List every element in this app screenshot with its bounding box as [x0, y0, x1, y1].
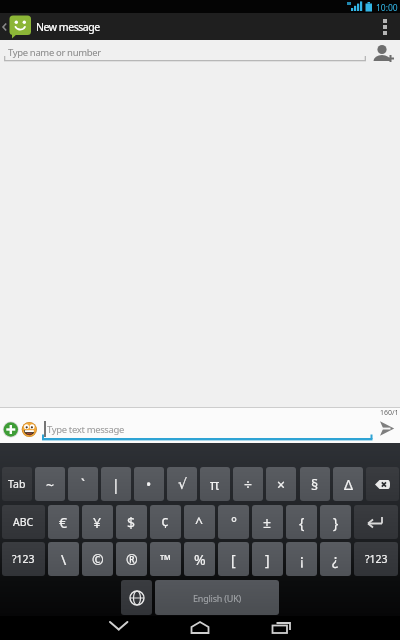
button[interactable] [0, 13, 34, 40]
staticText: ^ [195, 513, 204, 532]
staticText: { [299, 513, 305, 532]
button[interactable] [0, 40, 400, 67]
staticText: ¿ [332, 550, 339, 569]
staticText: € [59, 513, 68, 532]
staticText: } [333, 513, 339, 532]
button[interactable] [370, 415, 400, 441]
staticText: ~ [46, 475, 55, 494]
button[interactable]: { [286, 505, 317, 539]
button[interactable]: ° [218, 505, 249, 539]
staticText: 10:00 [376, 2, 398, 14]
staticText: $ [127, 513, 136, 532]
staticText: × [277, 475, 286, 494]
button[interactable]: ` [68, 467, 98, 501]
staticText: ¢ [161, 513, 170, 532]
button[interactable]: ¿ [320, 542, 351, 576]
button[interactable]: ^ [184, 505, 215, 539]
button[interactable]: [ [218, 542, 249, 576]
staticText: ABC [13, 515, 34, 529]
staticText: ] [265, 550, 270, 569]
button[interactable]: ?123 [2, 542, 45, 576]
staticText: Type text message [47, 423, 125, 436]
staticText: Tab [8, 477, 26, 491]
button[interactable] [374, 13, 400, 40]
button[interactable] [98, 616, 138, 640]
button[interactable]: ¡ [286, 542, 317, 576]
staticText: ÷ [244, 475, 253, 494]
button[interactable]: } [320, 505, 351, 539]
button[interactable]: π [200, 467, 230, 501]
staticText: 160/1 [380, 408, 399, 418]
button[interactable]: English (UK) [155, 580, 279, 615]
staticText: ¡ [300, 550, 304, 569]
button[interactable]: ¢ [150, 505, 181, 539]
button[interactable]: ABC [2, 505, 45, 539]
staticText: \ [61, 550, 67, 569]
button[interactable]: √ [167, 467, 197, 501]
button[interactable]: ® [116, 542, 147, 576]
staticText: ¥ [93, 513, 102, 532]
button[interactable]: © [82, 542, 113, 576]
button[interactable]: % [184, 542, 215, 576]
staticText: [ [231, 550, 236, 569]
button[interactable]: × [266, 467, 296, 501]
button[interactable] [0, 13, 400, 40]
staticText: Δ [344, 475, 353, 494]
button[interactable] [180, 616, 220, 640]
button[interactable]: ™ [150, 542, 181, 576]
button[interactable]: Tab [2, 467, 32, 501]
button[interactable]: € [48, 505, 79, 539]
button[interactable] [2, 413, 20, 432]
staticText: • [146, 475, 152, 494]
staticText: √ [178, 476, 187, 492]
staticText: % [194, 550, 206, 569]
button[interactable]: § [300, 467, 330, 501]
button[interactable]: • [134, 467, 164, 501]
staticText: © [92, 550, 104, 569]
staticText: ° [231, 513, 237, 532]
button[interactable] [121, 580, 152, 615]
button[interactable]: $ [116, 505, 147, 539]
staticText: | [112, 475, 120, 494]
button[interactable] [21, 413, 38, 432]
staticText: New message [36, 20, 100, 34]
staticText: English (UK) [193, 592, 242, 604]
button[interactable] [366, 467, 399, 501]
button[interactable]: Δ [333, 467, 363, 501]
button[interactable]: | [101, 467, 131, 501]
staticText: ?123 [12, 552, 35, 566]
staticText: ™ [160, 550, 171, 569]
staticText: § [311, 475, 319, 494]
button[interactable] [260, 616, 300, 640]
button[interactable] [354, 505, 398, 539]
staticText: Type name or number [8, 46, 101, 59]
staticText: ± [263, 513, 272, 532]
button[interactable]: ?123 [354, 542, 398, 576]
button[interactable] [41, 410, 373, 443]
button[interactable]: ± [252, 505, 283, 539]
button[interactable]: ¥ [82, 505, 113, 539]
staticText: π [210, 475, 220, 494]
button[interactable]: ÷ [233, 467, 263, 501]
button[interactable]: \ [48, 542, 79, 576]
staticText: ?123 [365, 552, 388, 566]
button[interactable]: ] [252, 542, 283, 576]
staticText: ` [81, 475, 85, 494]
button[interactable] [368, 42, 398, 65]
button[interactable]: ~ [35, 467, 65, 501]
staticText: ® [126, 550, 138, 569]
